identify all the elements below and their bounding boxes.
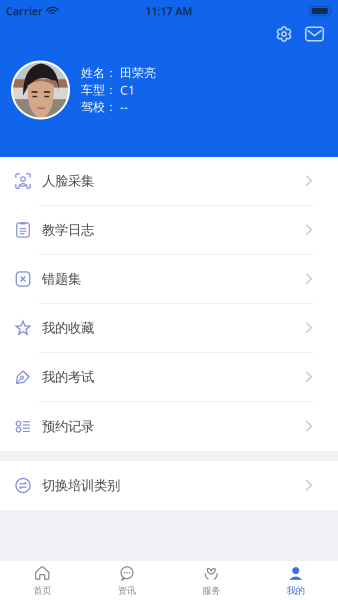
button[interactable]: 我的收藏 [0, 304, 338, 353]
staticText: 驾校： [81, 100, 117, 114]
staticText: 我的 [287, 585, 305, 596]
staticText: 切换培训类别 [42, 477, 120, 494]
button[interactable]: 错题集 [0, 255, 338, 304]
button[interactable]: 首页 [0, 560, 84, 600]
staticText: C1 [120, 82, 135, 98]
button[interactable]: 设置 [269, 20, 299, 48]
button[interactable]: 我的 [253, 560, 338, 600]
staticText: 资讯 [118, 585, 136, 596]
staticText: 教学日志 [42, 222, 94, 238]
staticText: 首页 [33, 585, 51, 596]
button[interactable]: 教学日志 [0, 206, 338, 255]
button[interactable]: 服务 [169, 560, 253, 600]
button[interactable]: 消息 [299, 20, 330, 48]
staticText: 预约记录 [42, 418, 94, 435]
button[interactable]: 人脸采集 [0, 157, 338, 206]
staticText: 田荣亮 [120, 66, 156, 80]
staticText: 车型： [81, 83, 117, 97]
staticText: 11:17 AM [145, 4, 192, 18]
staticText: 人脸采集 [42, 173, 94, 189]
staticText: -- [120, 99, 128, 115]
staticText: 我的考试 [42, 369, 94, 385]
button[interactable]: 切换培训类别 [0, 461, 338, 510]
button[interactable]: 我的考试 [0, 353, 338, 402]
staticText: 服务 [202, 585, 220, 596]
staticText: 姓名： [81, 66, 117, 80]
staticText: 错题集 [42, 271, 81, 287]
staticText: 我的收藏 [42, 320, 94, 336]
button[interactable]: 资讯 [84, 560, 169, 600]
staticText: Carrier [6, 4, 43, 18]
button[interactable]: 预约记录 [0, 402, 338, 451]
